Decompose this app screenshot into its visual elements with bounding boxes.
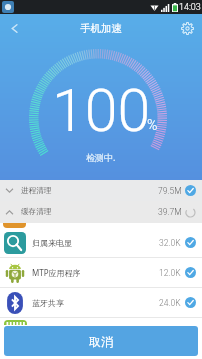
staticText: 32.0K — [159, 238, 181, 248]
button[interactable]: 取消 — [4, 326, 198, 356]
button[interactable]: 进程清理 — [0, 180, 202, 201]
staticText: 100 — [52, 76, 151, 145]
button[interactable]: MTP应用程序 — [0, 258, 202, 287]
staticText: 检测中. — [86, 151, 116, 163]
staticText: 蓝牙共享 — [32, 298, 64, 308]
staticText: 缓存清理 — [21, 207, 52, 217]
staticText: 79.5M — [158, 186, 182, 196]
staticText: 取消 — [89, 334, 113, 349]
staticText: MTP应用程序 — [32, 267, 81, 278]
staticText: % — [147, 117, 158, 133]
button[interactable]: 缓存清理 — [0, 201, 202, 223]
button[interactable]: 归属来电显 — [0, 228, 202, 257]
staticText: 进程清理 — [21, 186, 52, 196]
staticText: 14:03 — [179, 2, 201, 13]
staticText: 24.0K — [159, 298, 181, 308]
button[interactable]: Settings — [173, 14, 202, 43]
button[interactable]: 蓝牙共享 — [0, 288, 202, 317]
staticText: 归属来电显 — [32, 238, 72, 248]
staticText: 39.7M — [158, 207, 182, 217]
staticText: 12.0K — [159, 268, 181, 278]
button[interactable]: Back — [0, 14, 28, 43]
staticText: 手机加速 — [80, 22, 122, 35]
